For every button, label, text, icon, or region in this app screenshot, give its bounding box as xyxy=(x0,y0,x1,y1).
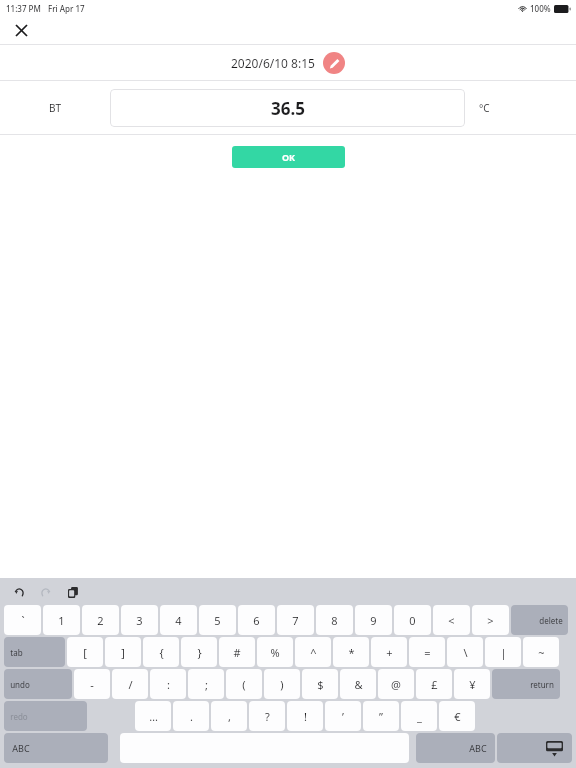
staticText: 2020/6/10 8:15 xyxy=(231,55,315,71)
button[interactable]: _ xyxy=(401,701,437,731)
staticText: , xyxy=(228,709,231,724)
staticText: ? xyxy=(265,709,270,724)
button[interactable]: @ xyxy=(378,669,414,699)
button[interactable]: ~ xyxy=(523,637,559,667)
staticText: 36.5 xyxy=(271,97,305,120)
button[interactable]: $ xyxy=(302,669,338,699)
staticText: ; xyxy=(205,677,208,692)
button[interactable]: , xyxy=(211,701,247,731)
staticText: - xyxy=(90,677,94,692)
staticText: 11:37 PM xyxy=(6,3,41,14)
button[interactable]: / xyxy=(112,669,148,699)
staticText: \ xyxy=(463,645,468,660)
button[interactable]: ) xyxy=(264,669,300,699)
staticText: … xyxy=(149,709,158,724)
button[interactable]: ABC xyxy=(416,733,495,763)
button[interactable]: * xyxy=(333,637,369,667)
staticText: 100% xyxy=(530,3,551,14)
button[interactable]: 9 xyxy=(355,605,392,635)
button[interactable]: [ xyxy=(67,637,103,667)
staticText: € xyxy=(454,709,461,724)
button[interactable]: OK xyxy=(232,146,345,168)
button[interactable]: ` xyxy=(4,605,41,635)
button[interactable]: Edit date xyxy=(323,52,345,74)
button[interactable]: < xyxy=(433,605,470,635)
staticText: Fri Apr 17 xyxy=(48,3,85,14)
staticText: ^ xyxy=(310,645,317,660)
button[interactable]: 5 xyxy=(199,605,236,635)
button[interactable]: 6 xyxy=(238,605,275,635)
button[interactable]: undo xyxy=(4,669,72,699)
staticText: ` xyxy=(21,613,25,628)
staticText: > xyxy=(487,613,494,628)
staticText: delete xyxy=(539,615,563,626)
button[interactable]: ” xyxy=(363,701,399,731)
staticText: 4 xyxy=(175,613,182,628)
button[interactable]: Redo xyxy=(35,581,57,603)
staticText: } xyxy=(197,645,202,660)
button[interactable]: : xyxy=(150,669,186,699)
button[interactable]: 0 xyxy=(394,605,431,635)
button[interactable]: | xyxy=(485,637,521,667)
button[interactable]: Close xyxy=(6,16,36,44)
button[interactable]: delete xyxy=(511,605,568,635)
button[interactable]: % xyxy=(257,637,293,667)
button[interactable]: tab xyxy=(4,637,65,667)
button[interactable]: ( xyxy=(226,669,262,699)
button[interactable]: £ xyxy=(416,669,452,699)
button[interactable]: { xyxy=(143,637,179,667)
button[interactable]: Undo xyxy=(8,581,30,603)
button[interactable]: ^ xyxy=(295,637,331,667)
staticText: : xyxy=(167,677,170,692)
button[interactable]: € xyxy=(439,701,475,731)
staticText: # xyxy=(233,645,241,660)
staticText: 8 xyxy=(331,613,338,628)
button[interactable]: Hide keyboard xyxy=(497,733,572,763)
staticText: OK xyxy=(282,151,296,163)
button[interactable]: > xyxy=(472,605,509,635)
staticText: redo xyxy=(10,711,28,722)
button[interactable]: Paste xyxy=(62,581,84,603)
button[interactable]: ] xyxy=(105,637,141,667)
button[interactable]: 3 xyxy=(121,605,158,635)
staticText: ] xyxy=(121,645,125,660)
button[interactable]: - xyxy=(74,669,110,699)
staticText: return xyxy=(530,679,554,690)
staticText: 2 xyxy=(97,613,104,628)
button[interactable]: 7 xyxy=(277,605,314,635)
staticText: ’ xyxy=(342,709,344,724)
button[interactable]: 8 xyxy=(316,605,353,635)
button[interactable]: = xyxy=(409,637,445,667)
button[interactable]: 1 xyxy=(43,605,80,635)
button[interactable]: ? xyxy=(249,701,285,731)
button[interactable]: redo xyxy=(4,701,87,731)
button[interactable]: + xyxy=(371,637,407,667)
button[interactable]: # xyxy=(219,637,255,667)
button[interactable]: ! xyxy=(287,701,323,731)
button[interactable]: ¥ xyxy=(454,669,490,699)
button[interactable]: ABC xyxy=(4,733,108,763)
staticText: ~ xyxy=(538,645,545,660)
button[interactable]: return xyxy=(492,669,560,699)
button[interactable]: } xyxy=(181,637,217,667)
staticText: + xyxy=(386,645,393,660)
button[interactable]: 2 xyxy=(82,605,119,635)
button[interactable]: \ xyxy=(447,637,483,667)
staticText: tab xyxy=(10,647,23,658)
staticText: & xyxy=(354,677,363,692)
button[interactable]: . xyxy=(173,701,209,731)
button[interactable]: ; xyxy=(188,669,224,699)
button[interactable]: 4 xyxy=(160,605,197,635)
staticText: @ xyxy=(391,677,401,692)
staticText: . xyxy=(190,709,193,724)
staticText: ( xyxy=(242,677,246,692)
button[interactable]: … xyxy=(135,701,171,731)
staticText: _ xyxy=(417,709,422,724)
staticText: 5 xyxy=(214,613,221,628)
button[interactable]: ’ xyxy=(325,701,361,731)
staticText: < xyxy=(448,613,455,628)
staticText: % xyxy=(270,645,280,660)
button[interactable]: & xyxy=(340,669,376,699)
button[interactable]: 36.5 xyxy=(110,89,465,127)
